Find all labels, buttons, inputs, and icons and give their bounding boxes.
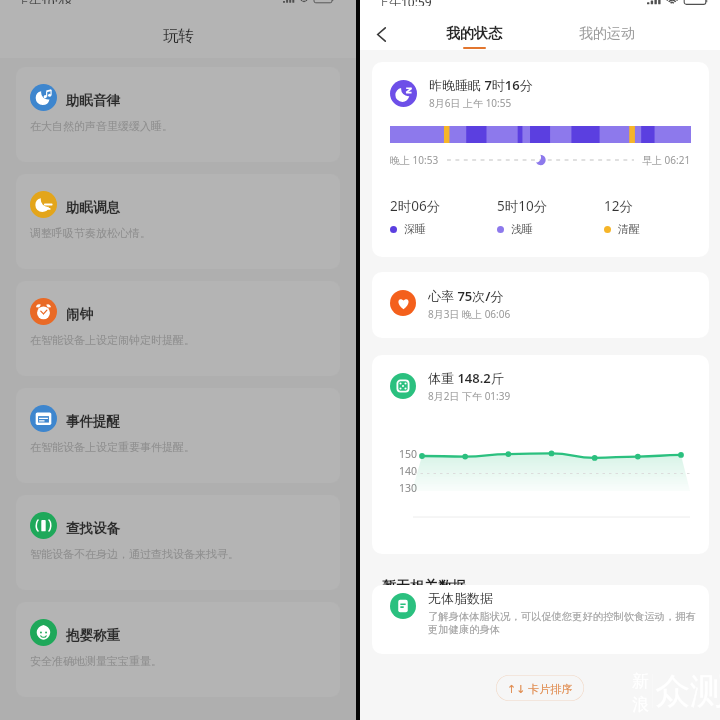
staticText: 调整呼吸节奏放松心情。 xyxy=(30,226,151,240)
staticText: 了解身体体脂状况，可以促使您更好的控制饮食运动，拥有更加健康的身体 xyxy=(428,610,700,636)
staticText: 浅睡 xyxy=(511,222,533,236)
staticText: 5时10分 xyxy=(497,197,548,215)
staticText: 我的状态 xyxy=(446,25,502,43)
staticText: 在大自然的声音里缓缓入睡。 xyxy=(30,119,173,133)
staticText: 新 xyxy=(632,671,649,692)
staticText: 查找设备 xyxy=(66,520,120,537)
staticText: 昨晚睡眠 7时16分 xyxy=(429,76,533,94)
staticText: 8月3日 晚上 06:06 xyxy=(428,307,511,321)
staticText: 130 xyxy=(399,481,418,495)
staticText: 深睡 xyxy=(404,222,426,236)
staticText: 上午10:59 xyxy=(377,0,432,6)
staticText: 智能设备不在身边，通过查找设备来找寻。 xyxy=(30,547,239,561)
staticText: 体重 148.2斤 xyxy=(428,369,504,387)
button[interactable]: 闹钟 xyxy=(16,281,340,376)
button[interactable]: 查找设备 xyxy=(16,495,340,590)
staticText: 140 xyxy=(399,464,418,478)
staticText: 安全准确地测量宝宝重量。 xyxy=(30,654,162,668)
staticText: 清醒 xyxy=(618,222,640,236)
staticText: 我的运动 xyxy=(579,25,635,43)
staticText: 助眠调息 xyxy=(66,199,120,216)
button[interactable]: 助眠音律 xyxy=(16,67,340,162)
button[interactable]: 事件提醒 xyxy=(16,388,340,483)
button[interactable]: 昨晚睡眠 7时16分 xyxy=(372,62,709,257)
staticText: 在智能设备上设定重要事件提醒。 xyxy=(30,440,195,454)
staticText: 玩转 xyxy=(163,26,194,46)
staticText: 暂无相关数据 xyxy=(382,578,466,596)
staticText: 无体脂数据 xyxy=(428,590,493,606)
staticText: ↑↓ 卡片排序 xyxy=(507,681,573,696)
button[interactable]: ↑↓ 卡片排序 xyxy=(496,675,584,701)
staticText: 早上 06:21 xyxy=(642,153,691,167)
staticText: 8月2日 下午 01:39 xyxy=(428,389,511,403)
button[interactable]: 无体脂数据 xyxy=(372,585,709,654)
button[interactable]: Back xyxy=(365,18,397,50)
staticText: 晚上 10:53 xyxy=(390,153,439,167)
staticText: 上午10:48 xyxy=(17,0,72,4)
button[interactable]: 我的运动 xyxy=(577,25,637,43)
staticText: 众测 xyxy=(655,669,720,713)
button[interactable]: 助眠调息 xyxy=(16,174,340,269)
button[interactable]: 抱婴称重 xyxy=(16,602,340,697)
staticText: 在智能设备上设定闹钟定时提醒。 xyxy=(30,333,195,347)
button[interactable]: 我的状态 xyxy=(444,25,504,49)
staticText: 助眠音律 xyxy=(66,92,120,109)
staticText: 浪 xyxy=(632,694,649,715)
button[interactable]: 体重 148.2斤 xyxy=(372,355,709,554)
staticText: 心率 75次/分 xyxy=(428,287,504,305)
staticText: 12分 xyxy=(604,197,633,215)
staticText: 2时06分 xyxy=(390,197,441,215)
staticText: 事件提醒 xyxy=(66,413,120,430)
staticText: 150 xyxy=(399,447,418,461)
staticText: 闹钟 xyxy=(66,306,93,323)
staticText: 抱婴称重 xyxy=(66,627,120,644)
button[interactable]: 心率 75次/分 xyxy=(372,272,709,338)
staticText: 8月6日 上午 10:55 xyxy=(429,96,512,110)
